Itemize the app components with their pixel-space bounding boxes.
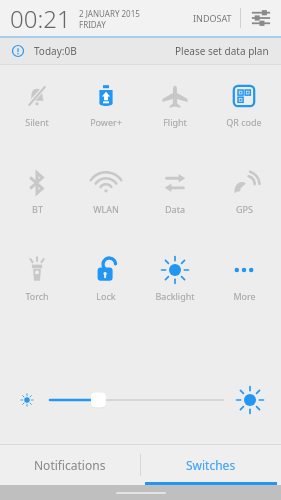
- staticText: Today:0B: [34, 44, 77, 58]
- button[interactable]: Minimum brightness: [16, 389, 38, 411]
- button[interactable]: Brightness: [50, 385, 223, 415]
- button[interactable]: BT: [5, 166, 69, 217]
- staticText: BT: [32, 203, 43, 215]
- button[interactable]: QR code: [212, 79, 276, 130]
- button[interactable]: Torch: [5, 253, 69, 304]
- staticText: Lock: [96, 290, 116, 302]
- button[interactable]: Today:0B: [0, 38, 281, 64]
- staticText: Flight: [163, 116, 187, 128]
- staticText: Notifications: [34, 457, 106, 473]
- staticText: Power+: [90, 116, 122, 128]
- button[interactable]: Data: [143, 166, 207, 217]
- staticText: More: [233, 290, 256, 302]
- staticText: Backlight: [155, 290, 195, 302]
- button[interactable]: Silent: [5, 79, 69, 130]
- staticText: Switches: [186, 457, 236, 473]
- button[interactable]: Flight: [143, 79, 207, 130]
- button[interactable]: GPS: [212, 166, 276, 217]
- staticText: 00:21: [10, 2, 71, 35]
- button[interactable]: Notifications: [0, 445, 140, 485]
- staticText: FRIDAY: [79, 19, 106, 30]
- staticText: WLAN: [93, 203, 119, 215]
- button[interactable]: Maximum brightness: [235, 385, 265, 415]
- staticText: QR code: [226, 116, 262, 128]
- button[interactable]: More: [212, 253, 276, 304]
- button[interactable]: Settings: [249, 6, 273, 30]
- staticText: GPS: [236, 203, 253, 215]
- staticText: INDOSAT: [193, 12, 232, 24]
- staticText: Please set data plan: [175, 44, 269, 58]
- button[interactable]: Lock: [74, 253, 138, 304]
- staticText: Torch: [25, 290, 49, 302]
- button[interactable]: Backlight: [143, 253, 207, 304]
- staticText: Silent: [25, 116, 49, 128]
- button[interactable]: Power+: [74, 79, 138, 130]
- staticText: Data: [165, 203, 185, 215]
- button[interactable]: WLAN: [74, 166, 138, 217]
- staticText: 2 JANUARY 2015: [79, 8, 140, 19]
- button[interactable]: Switches: [141, 445, 281, 485]
